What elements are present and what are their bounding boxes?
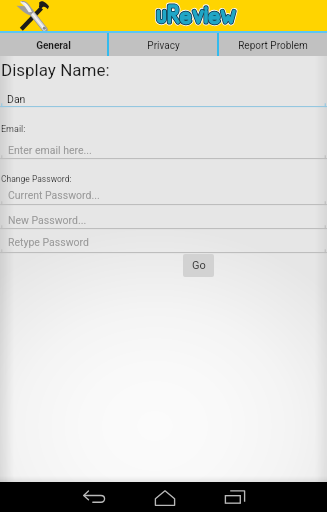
button[interactable] [0, 201, 327, 207]
button[interactable]: Back [70, 482, 118, 512]
staticText: General [36, 40, 71, 52]
staticText: Go [192, 259, 206, 272]
staticText: Dan [7, 93, 26, 105]
button[interactable] [0, 249, 327, 255]
staticText: Change Password: [1, 174, 72, 184]
button[interactable] [0, 103, 327, 109]
button[interactable]: Home [141, 482, 189, 512]
button[interactable]: Recent apps [211, 482, 259, 512]
staticText: Retype Password [8, 236, 89, 248]
button[interactable]: Report Problem [219, 33, 327, 56]
button[interactable] [0, 225, 327, 231]
staticText: New Password... [8, 214, 87, 226]
staticText: Enter email here... [8, 144, 92, 156]
staticText: Display Name: [1, 60, 110, 80]
button[interactable]: Privacy [109, 33, 217, 56]
button[interactable]: Go [183, 254, 214, 277]
button[interactable] [0, 155, 327, 161]
staticText: Email: [1, 124, 26, 135]
button[interactable]: General [0, 33, 107, 56]
staticText: Privacy [147, 40, 180, 52]
staticText: Report Problem [238, 40, 308, 52]
staticText: Current Password... [8, 189, 100, 201]
